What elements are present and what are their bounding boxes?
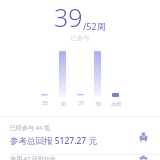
staticText: 39 xyxy=(54,0,83,34)
staticText: 37 xyxy=(78,100,84,107)
staticText: 36 xyxy=(60,101,66,107)
other: Total return details xyxy=(135,128,151,144)
staticText: 已经参与 44 笔 xyxy=(10,124,50,132)
staticText: 35 xyxy=(42,100,48,107)
staticText: /52周 xyxy=(83,20,106,32)
staticText: 本周 xyxy=(111,101,121,107)
staticText: 使用 47 张抵扣金 xyxy=(10,155,56,160)
button[interactable]: 已经参与 44 笔 xyxy=(0,117,160,154)
other: Cash deduction details xyxy=(135,155,151,160)
staticText: 参考总回报 5127.27 元 xyxy=(10,135,97,147)
staticText: 已参与 xyxy=(71,34,89,42)
button[interactable]: 使用 47 张抵扣金 xyxy=(0,155,160,160)
staticText: 38 xyxy=(95,101,101,107)
